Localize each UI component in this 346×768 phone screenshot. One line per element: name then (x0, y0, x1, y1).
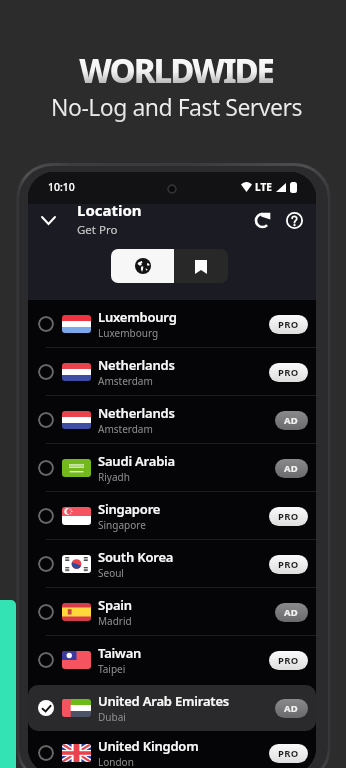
staticText: Location (77, 200, 142, 220)
button[interactable]: United Kingdom (28, 732, 316, 768)
button[interactable]: Saudi Arabia (28, 445, 316, 491)
staticText: Netherlands (98, 356, 175, 374)
button[interactable]: All servers (111, 249, 174, 283)
staticText: Spain (98, 596, 132, 614)
staticText: Luxembourg (98, 308, 177, 326)
staticText: Dubai (98, 710, 126, 724)
staticText: AD (284, 702, 299, 715)
staticText: AD (284, 414, 299, 427)
button[interactable]: South Korea (28, 541, 316, 587)
staticText: Netherlands (98, 404, 175, 422)
staticText: Get Pro (77, 222, 118, 238)
staticText: PRO (278, 558, 299, 571)
button[interactable]: Saved servers (174, 249, 228, 283)
button[interactable]: Spain (28, 589, 316, 635)
button[interactable]: Luxembourg (28, 301, 316, 347)
staticText: Singapore (98, 518, 146, 532)
button[interactable]: Refresh (248, 206, 276, 234)
staticText: Taipei (98, 662, 126, 676)
staticText: 10:10 (48, 180, 75, 194)
staticText: Madrid (98, 614, 132, 628)
staticText: South Korea (98, 548, 174, 566)
button[interactable]: Collapse (35, 207, 61, 233)
button[interactable]: Netherlands (28, 349, 316, 395)
staticText: Saudi Arabia (98, 452, 175, 470)
staticText: Amsterdam (98, 374, 153, 388)
button[interactable]: Help (280, 206, 308, 234)
staticText: Singapore (98, 500, 161, 518)
button[interactable]: Singapore (28, 493, 316, 539)
staticText: PRO (278, 318, 299, 331)
staticText: LTE (255, 180, 272, 194)
staticText: London (98, 755, 134, 768)
staticText: Riyadh (98, 470, 130, 484)
staticText: No-Log and Fast Servers (51, 91, 303, 122)
button[interactable]: Taiwan (28, 637, 316, 683)
staticText: Seoul (98, 566, 124, 580)
button[interactable]: Netherlands (28, 397, 316, 443)
staticText: PRO (278, 654, 299, 667)
staticText: Amsterdam (98, 422, 153, 436)
staticText: WORLDWIDE (79, 48, 273, 93)
staticText: Taiwan (98, 644, 142, 662)
staticText: PRO (278, 510, 299, 523)
staticText: United Kingdom (98, 737, 199, 755)
staticText: PRO (278, 366, 299, 379)
staticText: AD (284, 606, 299, 619)
staticText: PRO (278, 747, 299, 760)
staticText: Luxembourg (98, 326, 159, 340)
staticText: United Arab Emirates (98, 692, 230, 710)
button[interactable]: United Arab Emirates (28, 685, 316, 731)
staticText: AD (284, 462, 299, 475)
